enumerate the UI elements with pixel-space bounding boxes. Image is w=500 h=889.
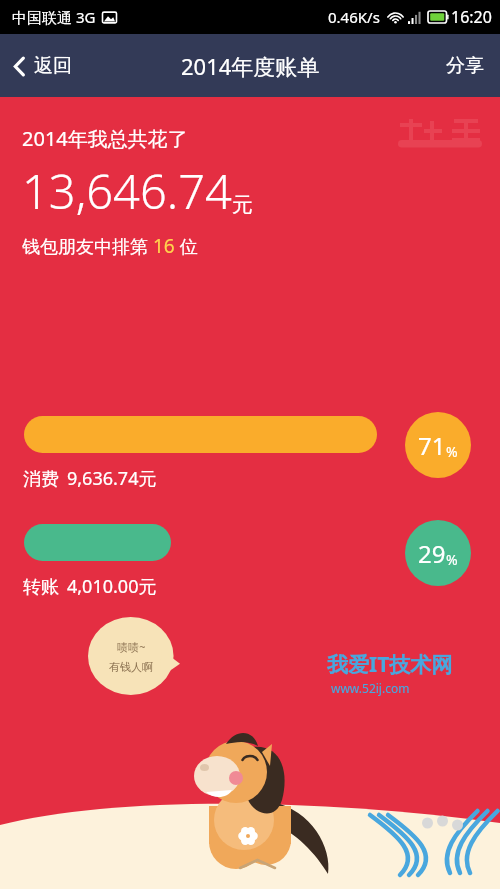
button[interactable]	[24, 416, 377, 453]
staticText: %	[446, 442, 458, 461]
staticText: 啧啧~	[117, 639, 146, 654]
button[interactable]: 返回	[0, 42, 86, 90]
staticText: 有钱人啊	[109, 660, 153, 674]
staticText: 位	[175, 234, 198, 259]
staticText: www.52ij.com	[331, 680, 410, 696]
staticText: 29	[418, 537, 446, 570]
staticText: 分享	[446, 54, 484, 78]
staticText: 71	[418, 429, 446, 462]
staticText: 9,636.74元	[67, 466, 157, 491]
staticText: 我爱IT技术网	[327, 650, 453, 679]
button[interactable]: 分享	[430, 42, 500, 90]
button[interactable]	[24, 524, 171, 561]
button[interactable]: Expand	[214, 855, 286, 889]
staticText: 转账	[23, 576, 59, 599]
button[interactable]: 29	[405, 520, 471, 586]
staticText: 中国联通 3G	[12, 7, 96, 27]
button[interactable]: 71	[405, 412, 471, 478]
staticText: 消费	[23, 468, 59, 491]
staticText: %	[446, 550, 458, 569]
staticText: 元	[232, 192, 253, 218]
staticText: 16:20	[451, 6, 492, 28]
staticText: 2014年我总共花了	[22, 125, 188, 152]
staticText: 0.46K/s	[328, 7, 380, 27]
staticText: 13,646.74	[22, 159, 232, 223]
staticText: 4,010.00元	[67, 574, 157, 599]
staticText: 钱包朋友中排第	[22, 234, 153, 259]
staticText: 16	[153, 233, 175, 259]
staticText: 返回	[34, 54, 72, 78]
staticText: 2014年度账单	[181, 51, 320, 81]
